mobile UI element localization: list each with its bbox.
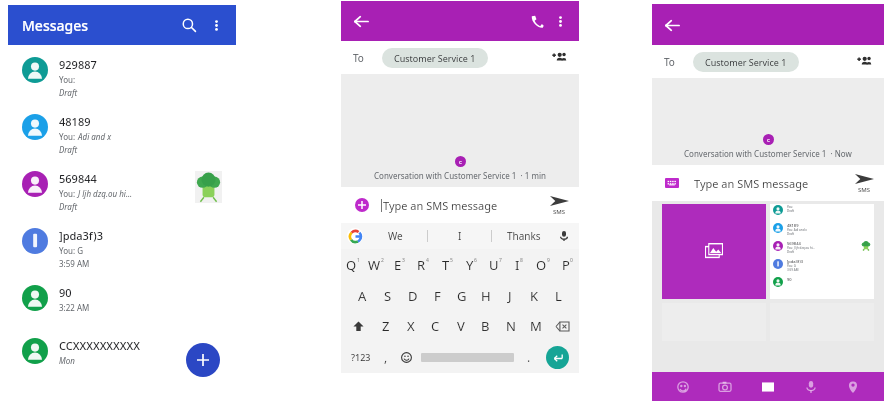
staticText: Messages [22, 16, 176, 35]
button[interactable]: Voice [799, 375, 823, 399]
button[interactable]: C [423, 311, 448, 341]
staticText: G [457, 287, 467, 305]
button[interactable]: We [363, 223, 427, 249]
button[interactable]: X [398, 311, 423, 341]
staticText: SMS [553, 208, 566, 216]
button[interactable]: Photo [662, 204, 766, 299]
button[interactable]: A [350, 281, 375, 311]
button[interactable]: Z [373, 311, 398, 341]
button[interactable]: Send [855, 173, 874, 194]
button[interactable]: R [411, 249, 435, 281]
button[interactable]: Thanks [492, 223, 555, 249]
button[interactable]: Add people [854, 52, 874, 72]
staticText: Customer Service 1 [705, 56, 787, 68]
staticText: D [408, 287, 418, 305]
button[interactable]: Camera [713, 375, 737, 399]
button[interactable]: O [531, 249, 555, 281]
button[interactable]: I [507, 249, 531, 281]
button[interactable]: Customer Service 1 [382, 48, 488, 68]
button[interactable]: Start chat [186, 343, 220, 377]
button[interactable]: Comma [376, 341, 395, 373]
button[interactable]: CCXXXXXXXXXX [8, 334, 236, 387]
button[interactable]: Q [341, 249, 364, 281]
button[interactable]: Add people [549, 48, 569, 68]
button[interactable]: F [425, 281, 450, 311]
button[interactable]: P [555, 249, 579, 281]
button[interactable]: Y [459, 249, 483, 281]
staticText: B [481, 317, 490, 335]
button[interactable]: I [428, 223, 491, 249]
button[interactable]: Shift [344, 311, 373, 341]
button[interactable]: H [474, 281, 498, 311]
staticText: 3:59 AM [787, 268, 799, 272]
staticText: O [536, 256, 547, 274]
staticText: C [431, 317, 440, 335]
button[interactable]: Period [518, 341, 540, 373]
staticText: c [459, 158, 462, 166]
button[interactable]: Gallery [756, 375, 780, 399]
button[interactable]: Search [176, 12, 202, 38]
button[interactable]: Location [841, 375, 865, 399]
button[interactable]: T [435, 249, 459, 281]
staticText: Conversation with Customer Service 1 · N… [684, 148, 852, 159]
button[interactable]: W [364, 249, 387, 281]
button[interactable]: D [400, 281, 425, 311]
button[interactable]: Enter [540, 341, 574, 373]
staticText: 929887 [59, 57, 97, 72]
button[interactable]: 569844 [8, 167, 236, 224]
button[interactable]: 48189 [8, 110, 236, 167]
staticText: 1 [357, 257, 360, 264]
staticText: . [527, 349, 531, 365]
staticText: CCXXXXXXXXXX [59, 338, 140, 353]
button[interactable]: Voice input [555, 227, 573, 245]
button[interactable]: K [522, 281, 546, 311]
staticText: 9 [547, 257, 550, 264]
staticText: 4 [426, 257, 429, 264]
button[interactable]: L [546, 281, 570, 311]
button[interactable]: B [473, 311, 498, 341]
button[interactable]: Send [550, 195, 569, 216]
button[interactable]: More options [204, 13, 228, 37]
button[interactable]: Google [347, 228, 363, 244]
staticText: , [384, 349, 388, 365]
button[interactable]: ]pda3f)3 [8, 224, 236, 281]
button[interactable]: ?123 [346, 341, 376, 373]
button[interactable]: Backspace [548, 311, 576, 341]
button[interactable]: 90 [8, 281, 236, 334]
button[interactable]: Keyboard [663, 174, 681, 192]
staticText: Y [466, 256, 474, 274]
staticText: V [457, 317, 465, 335]
button[interactable]: Customer Service 1 [693, 52, 799, 72]
staticText: Mon [59, 355, 75, 366]
button[interactable]: Stickers [671, 375, 695, 399]
button[interactable]: 929887 [8, 53, 236, 110]
button[interactable]: J [498, 281, 522, 311]
staticText: Draft [59, 87, 78, 98]
staticText: 8 [520, 257, 523, 264]
button[interactable]: Emoji [395, 341, 417, 373]
button[interactable]: Attach [352, 195, 372, 215]
staticText: Q [346, 256, 357, 274]
staticText: SMS [858, 186, 871, 194]
staticText: ?123 [351, 351, 371, 363]
staticText: ]pda3f)3 [787, 259, 803, 264]
button[interactable]: Call [525, 9, 549, 33]
button[interactable]: G [450, 281, 474, 311]
staticText: 6 [474, 257, 477, 264]
button[interactable]: M [523, 311, 548, 341]
button[interactable]: V [448, 311, 473, 341]
staticText: E [394, 256, 402, 274]
button[interactable]: More options [549, 10, 571, 32]
button[interactable]: N [498, 311, 523, 341]
button[interactable]: Screenshot [770, 204, 874, 299]
staticText: You: [59, 74, 76, 85]
staticText: Draft [787, 232, 795, 236]
button[interactable]: U [483, 249, 507, 281]
button[interactable]: Back [665, 13, 689, 37]
button[interactable]: Space [417, 341, 518, 373]
button[interactable]: E [387, 249, 411, 281]
button[interactable]: S [375, 281, 400, 311]
button[interactable]: Back [354, 9, 378, 33]
